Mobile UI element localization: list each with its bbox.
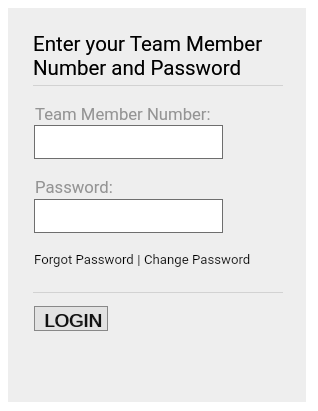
button[interactable]: Forgot Password: [34, 252, 134, 267]
button[interactable]: Change Password: [144, 252, 251, 267]
staticText: Team Member Number:: [35, 105, 211, 125]
staticText: Enter your Team Member: [33, 32, 263, 56]
staticText: Number and Password: [33, 56, 241, 80]
staticText: Password:: [35, 178, 113, 198]
button[interactable]: Team Member Number input field: [34, 125, 223, 159]
button[interactable]: Password input field: [34, 199, 223, 233]
staticText: LOGIN: [44, 310, 102, 331]
staticText: LOGIN: [45, 310, 103, 331]
staticText: Enter your Team Member: [33, 32, 263, 56]
staticText: |: [134, 252, 144, 267]
staticText: Number and Password: [33, 56, 241, 80]
button[interactable]: LOGIN: [34, 306, 108, 331]
